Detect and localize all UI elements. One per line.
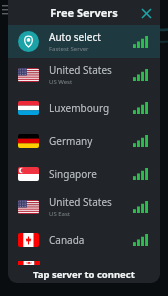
staticText: Luxembourg <box>49 101 110 115</box>
staticText: United States <box>49 63 112 77</box>
staticText: US East <box>49 210 70 218</box>
button[interactable]: United States <box>8 190 160 223</box>
staticText: Germany <box>49 134 93 148</box>
staticText: Free Servers <box>50 5 118 20</box>
button[interactable]: Canada <box>8 223 160 256</box>
staticText: US West <box>49 78 73 86</box>
staticText: Fastest Server <box>49 45 89 53</box>
button[interactable]: United States <box>8 58 160 91</box>
staticText: Auto select <box>49 30 101 44</box>
button[interactable]: Singapore <box>8 157 160 190</box>
staticText: Singapore <box>49 167 97 181</box>
button[interactable]: Germany <box>8 124 160 157</box>
button[interactable]: Luxembourg <box>8 91 160 124</box>
button[interactable]: Auto select <box>8 25 160 58</box>
staticText: United States <box>49 195 112 209</box>
button[interactable]: Close <box>137 4 155 22</box>
staticText: Canada <box>49 233 85 247</box>
staticText: Tap server to connect <box>33 268 135 281</box>
button[interactable]: Menu <box>1 3 11 13</box>
